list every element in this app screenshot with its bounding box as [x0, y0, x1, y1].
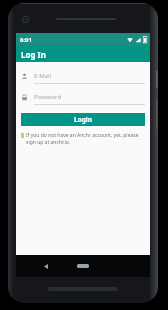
staticText: Login — [74, 115, 92, 124]
button[interactable]: Home — [73, 260, 93, 272]
button[interactable]: E-Mail field — [21, 72, 145, 84]
staticText: Log In — [21, 49, 46, 60]
staticText: Password — [34, 93, 62, 101]
button[interactable]: Back — [40, 260, 52, 272]
staticText: If you do not have an Anchr account, yet… — [26, 132, 145, 146]
staticText: E-Mail — [34, 72, 52, 80]
button[interactable]: Login — [21, 113, 145, 126]
button[interactable]: Password field — [21, 93, 145, 105]
staticText: 6:01 — [20, 36, 32, 44]
